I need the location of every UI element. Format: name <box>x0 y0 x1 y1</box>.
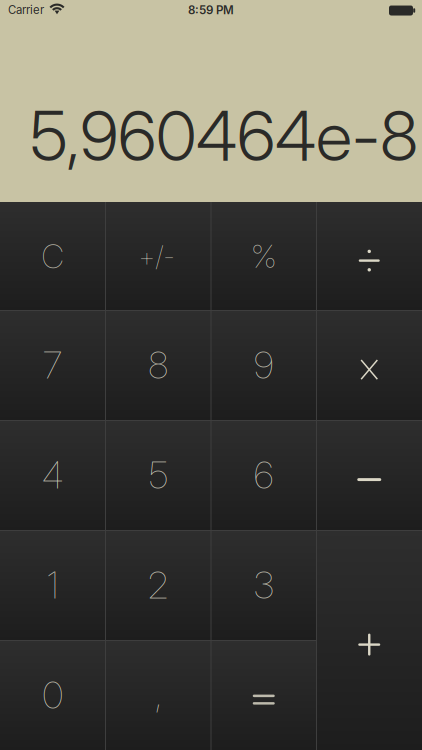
button[interactable]: 8 <box>105 310 211 420</box>
staticText: 8 <box>148 342 168 388</box>
button[interactable]: Plus <box>316 530 422 750</box>
staticText: +/- <box>138 239 175 273</box>
staticText: 8:59 PM <box>188 3 234 17</box>
button[interactable]: 5 <box>105 420 211 530</box>
button[interactable]: 6 <box>211 420 316 530</box>
staticText: 7 <box>43 342 63 388</box>
staticText: 5 <box>149 452 168 498</box>
button[interactable]: , <box>105 640 211 750</box>
button[interactable]: Minus <box>316 420 422 530</box>
button[interactable]: 0 <box>0 640 105 750</box>
staticText: 2 <box>148 562 169 608</box>
button[interactable]: % <box>211 202 316 310</box>
staticText: , <box>154 671 162 717</box>
button[interactable]: 1 <box>0 530 105 640</box>
staticText: 6 <box>254 452 274 498</box>
staticText: % <box>251 237 277 275</box>
button[interactable]: 4 <box>0 420 105 530</box>
staticText: 9 <box>254 342 274 388</box>
staticText: 0 <box>42 672 63 718</box>
button[interactable]: +/- <box>105 202 211 310</box>
button[interactable]: C <box>0 202 105 310</box>
button[interactable]: 2 <box>105 530 211 640</box>
staticText: 4 <box>42 452 64 498</box>
button[interactable]: Equals <box>211 640 316 750</box>
staticText: 3 <box>254 562 274 608</box>
button[interactable]: Multiply <box>316 310 422 420</box>
staticText: C <box>41 236 64 276</box>
button[interactable]: 3 <box>211 530 316 640</box>
staticText: 5,960464e-8 <box>30 95 418 177</box>
staticText: 1 <box>47 562 59 608</box>
button[interactable]: 9 <box>211 310 316 420</box>
staticText: Carrier <box>8 3 44 17</box>
button[interactable]: Divide <box>316 202 422 310</box>
button[interactable]: 7 <box>0 310 105 420</box>
